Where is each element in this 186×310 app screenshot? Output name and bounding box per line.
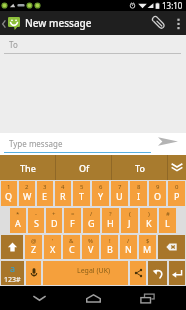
staticText: G bbox=[88, 217, 95, 229]
button[interactable]: 6 bbox=[92, 181, 109, 206]
button[interactable]: Shift bbox=[1, 235, 23, 259]
staticText: W bbox=[23, 190, 32, 202]
button[interactable]: + bbox=[46, 208, 62, 233]
staticText: T bbox=[79, 190, 85, 202]
staticText: To bbox=[9, 39, 18, 50]
button[interactable]: 5 bbox=[73, 181, 90, 206]
staticText: M bbox=[143, 243, 152, 255]
staticText: B bbox=[107, 243, 113, 255]
button[interactable]: Recent apps bbox=[132, 286, 163, 310]
button[interactable]: = bbox=[64, 208, 81, 233]
staticText: N bbox=[125, 243, 132, 255]
staticText: Of bbox=[79, 162, 90, 174]
button[interactable]: More options bbox=[170, 11, 186, 35]
staticText: 6 bbox=[99, 183, 103, 191]
button[interactable]: # bbox=[159, 208, 176, 233]
staticText: Y bbox=[98, 190, 104, 202]
button[interactable]: * bbox=[10, 208, 26, 233]
button[interactable]: Emoji bbox=[130, 261, 146, 285]
button[interactable]: Of bbox=[56, 155, 112, 180]
button[interactable]: @ bbox=[25, 235, 42, 259]
button[interactable]: Enter bbox=[169, 261, 185, 285]
button[interactable]: Legal (UK) bbox=[43, 261, 128, 285]
staticText: To bbox=[135, 162, 145, 174]
staticText: $ bbox=[146, 237, 150, 245]
staticText: 8 bbox=[137, 183, 141, 191]
staticText: + bbox=[52, 210, 56, 218]
button[interactable]: Attach bbox=[148, 11, 170, 35]
button[interactable]: ! bbox=[101, 235, 118, 259]
button[interactable]: Navigate up bbox=[0, 17, 25, 30]
button[interactable]: ' bbox=[44, 235, 61, 259]
staticText: 4 bbox=[61, 183, 65, 191]
button[interactable]: Send bbox=[158, 136, 178, 147]
button[interactable]: Symbols bbox=[1, 261, 24, 285]
staticText: V bbox=[88, 243, 94, 255]
staticText: Legal (UK) bbox=[77, 266, 111, 276]
staticText: / bbox=[90, 210, 93, 218]
button[interactable]: ? bbox=[102, 208, 119, 233]
button[interactable]: 2 bbox=[19, 181, 35, 206]
staticText: ? bbox=[109, 210, 112, 218]
staticText: K bbox=[146, 217, 152, 229]
staticText: - bbox=[35, 210, 37, 218]
button[interactable]: ) bbox=[140, 208, 157, 233]
staticText: New message bbox=[25, 16, 92, 30]
staticText: * bbox=[16, 210, 20, 218]
button[interactable]: & bbox=[63, 235, 80, 259]
button[interactable]: 1 bbox=[1, 181, 17, 206]
staticText: D bbox=[51, 217, 58, 229]
staticText: a bbox=[10, 262, 16, 274]
button[interactable]: The bbox=[0, 155, 56, 180]
button[interactable]: To bbox=[112, 155, 168, 180]
button[interactable]: 0 bbox=[168, 181, 185, 206]
staticText: 2 bbox=[25, 183, 29, 191]
staticText: Type message bbox=[9, 138, 63, 149]
button[interactable]: - bbox=[28, 208, 44, 233]
staticText: Z bbox=[31, 243, 37, 255]
staticText: ) bbox=[148, 210, 150, 218]
staticText: H bbox=[107, 217, 114, 229]
button[interactable]: 7 bbox=[111, 181, 128, 206]
staticText: ' bbox=[52, 237, 54, 245]
staticText: The bbox=[20, 162, 36, 174]
staticText: P bbox=[174, 190, 180, 202]
staticText: & bbox=[69, 237, 74, 245]
button[interactable]: Home bbox=[78, 286, 109, 310]
button[interactable]: 3 bbox=[37, 181, 53, 206]
button[interactable]: ( bbox=[121, 208, 138, 233]
staticText: 0 bbox=[175, 183, 179, 191]
staticText: I bbox=[137, 190, 141, 202]
button[interactable]: $ bbox=[139, 235, 156, 259]
button[interactable]: 4 bbox=[55, 181, 71, 206]
staticText: 9 bbox=[156, 183, 160, 191]
staticText: R bbox=[60, 190, 66, 202]
staticText: ! bbox=[109, 237, 111, 245]
button[interactable]: % bbox=[82, 235, 99, 259]
staticText: 1 bbox=[7, 183, 11, 191]
button[interactable]: / bbox=[120, 235, 137, 259]
staticText: F bbox=[70, 217, 75, 229]
staticText: % bbox=[88, 237, 93, 245]
staticText: 123# bbox=[4, 275, 21, 285]
staticText: O bbox=[154, 190, 162, 202]
button[interactable]: Voice input bbox=[26, 261, 41, 285]
staticText: C bbox=[69, 243, 75, 255]
button[interactable]: 8 bbox=[130, 181, 147, 206]
staticText: S bbox=[34, 217, 39, 229]
staticText: Q bbox=[5, 190, 13, 202]
button[interactable]: More suggestions bbox=[168, 155, 186, 180]
staticText: E bbox=[42, 190, 48, 202]
button[interactable]: Backspace bbox=[158, 235, 185, 259]
staticText: # bbox=[166, 210, 170, 218]
staticText: A bbox=[15, 217, 21, 229]
staticText: 3 bbox=[43, 183, 47, 191]
staticText: U bbox=[116, 190, 123, 202]
button[interactable]: / bbox=[83, 208, 100, 233]
button[interactable]: 9 bbox=[149, 181, 166, 206]
button[interactable]: Back bbox=[24, 286, 55, 310]
button[interactable]: Undo bbox=[148, 261, 167, 285]
staticText: 7 bbox=[118, 183, 122, 191]
staticText: 5 bbox=[80, 183, 84, 191]
staticText: ( bbox=[129, 210, 131, 218]
